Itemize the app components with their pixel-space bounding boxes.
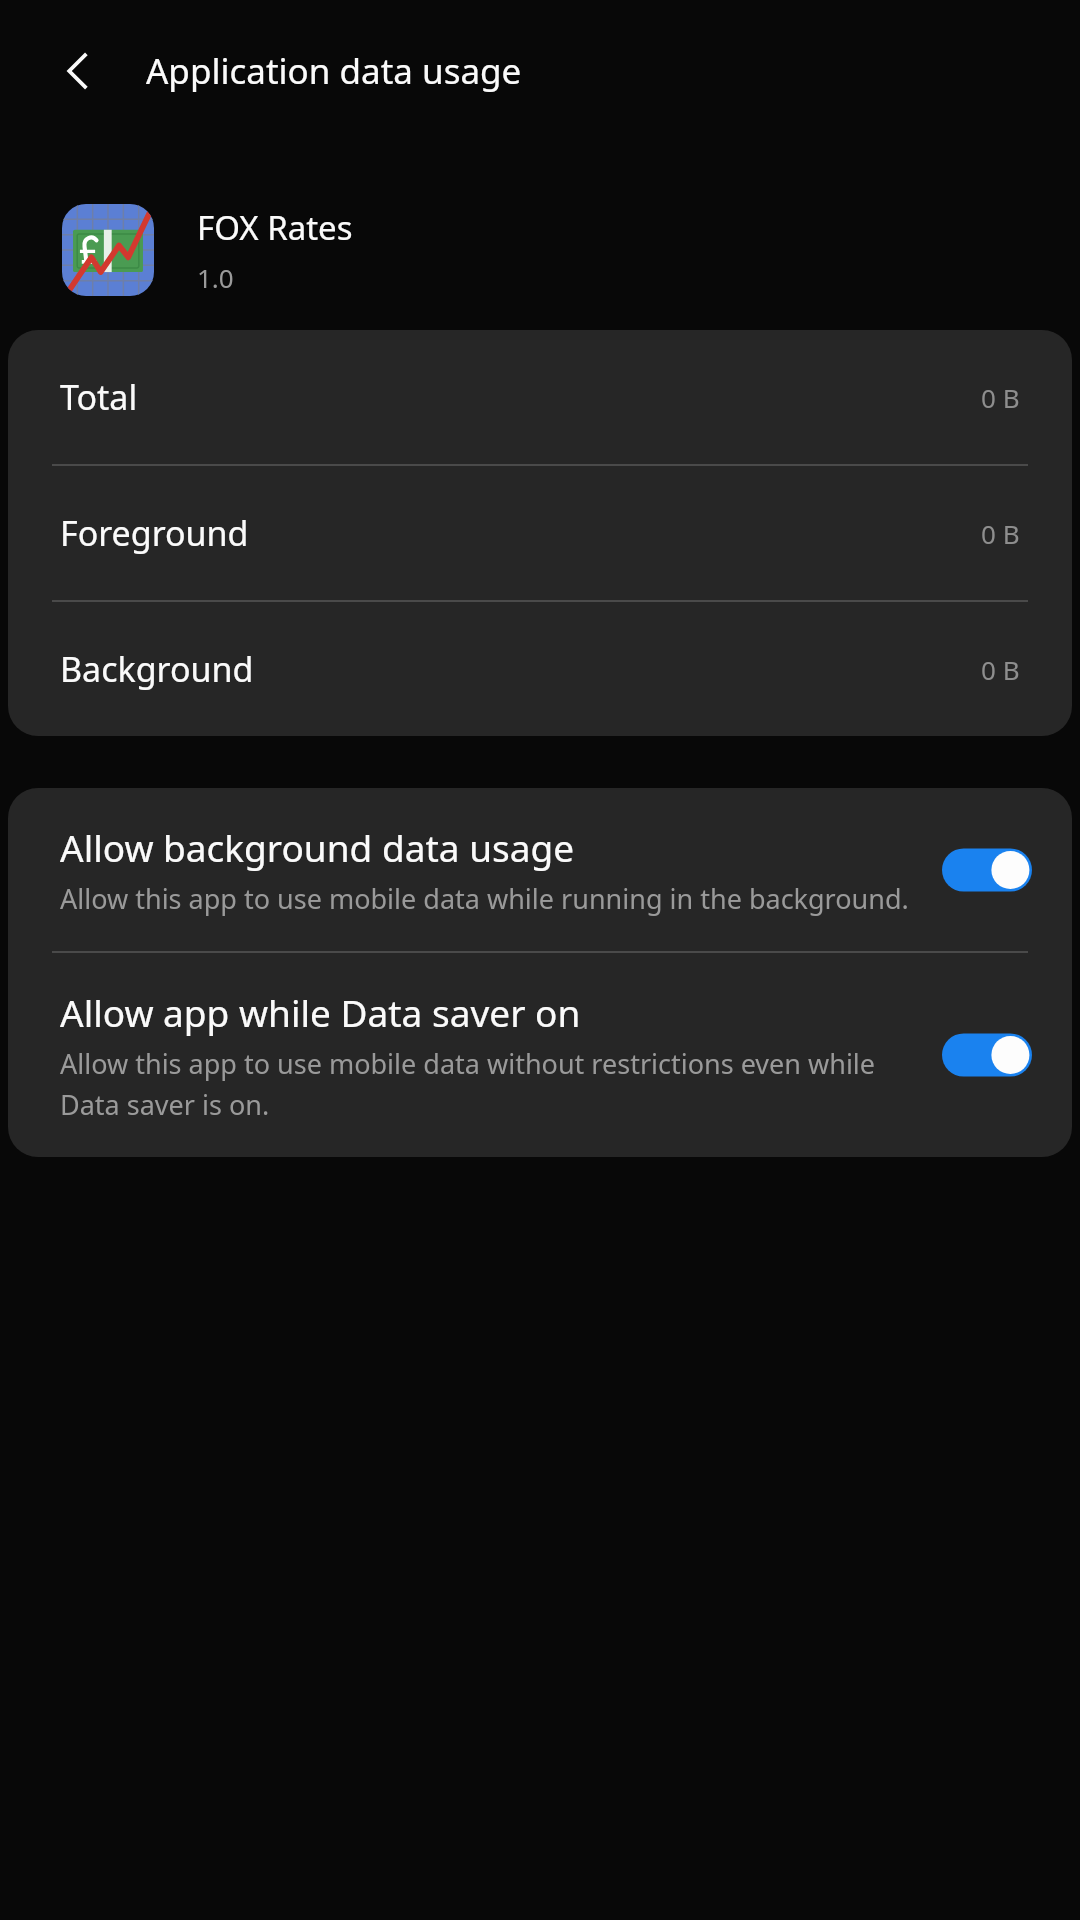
staticText: Allow background data usage	[60, 822, 575, 872]
button[interactable]: Allow app while Data saver on	[8, 953, 1072, 1157]
staticText: Foreground	[60, 510, 249, 556]
staticText: 0 B	[981, 516, 1020, 551]
button[interactable]: Allow background data usage	[942, 843, 1032, 897]
staticText: Allow this app to use mobile data while …	[60, 880, 909, 917]
staticText: Application data usage	[146, 47, 522, 95]
staticText: 0 B	[981, 380, 1020, 415]
staticText: 1.0	[197, 260, 234, 295]
button[interactable]: Allow background data usage	[8, 788, 1072, 951]
staticText: Allow this app to use mobile data withou…	[60, 1045, 918, 1123]
button[interactable]: Allow app while Data saver on	[942, 1028, 1032, 1082]
staticText: Allow app while Data saver on	[60, 987, 581, 1037]
staticText: Total	[60, 374, 138, 420]
button[interactable]: Background	[8, 602, 1072, 736]
button[interactable]: Total	[8, 330, 1072, 464]
staticText: FOX Rates	[197, 205, 353, 250]
staticText: Background	[60, 646, 254, 692]
button[interactable]: Foreground	[8, 466, 1072, 600]
button[interactable]: Navigate up	[28, 21, 128, 121]
staticText: 0 B	[981, 652, 1020, 687]
